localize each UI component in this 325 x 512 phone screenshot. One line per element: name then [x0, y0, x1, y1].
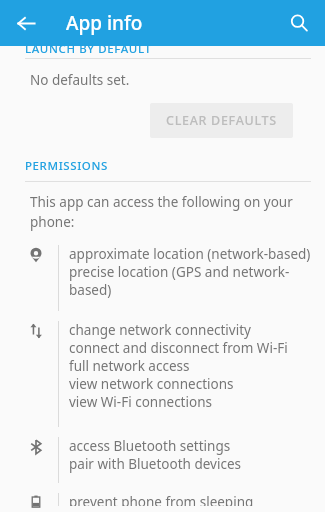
button[interactable]: CLEAR DEFAULTS [150, 103, 293, 138]
staticText: No defaults set. [30, 71, 130, 89]
button[interactable]: approximate location (network-based) [0, 245, 325, 321]
staticText: change network connectivity [69, 321, 251, 339]
staticText: LAUNCH BY DEFAULT [25, 41, 152, 53]
staticText: view Wi-Fi connections [69, 393, 212, 411]
staticText: PERMISSIONS [25, 158, 108, 174]
button[interactable]: access Bluetooth settings [0, 437, 325, 493]
staticText: access Bluetooth settings [69, 437, 231, 455]
staticText: App info [66, 10, 143, 36]
staticText: precise location (GPS and network- [69, 263, 290, 281]
staticText: approximate location (network-based) [69, 245, 311, 263]
staticText: prevent phone from sleeping [69, 493, 254, 506]
staticText: based) [69, 281, 112, 299]
button[interactable]: change network connectivity [0, 321, 325, 437]
staticText: pair with Bluetooth devices [69, 455, 241, 473]
staticText: view network connections [69, 375, 234, 393]
staticText: full network access [69, 357, 190, 375]
staticText: connect and disconnect from Wi-Fi [69, 339, 288, 357]
button[interactable]: Search [279, 3, 319, 43]
button[interactable]: Navigate up [6, 3, 46, 43]
button[interactable]: prevent phone from sleeping [0, 493, 325, 512]
staticText: CLEAR DEFAULTS [166, 112, 277, 129]
staticText: This app can access the following on you… [30, 193, 309, 231]
